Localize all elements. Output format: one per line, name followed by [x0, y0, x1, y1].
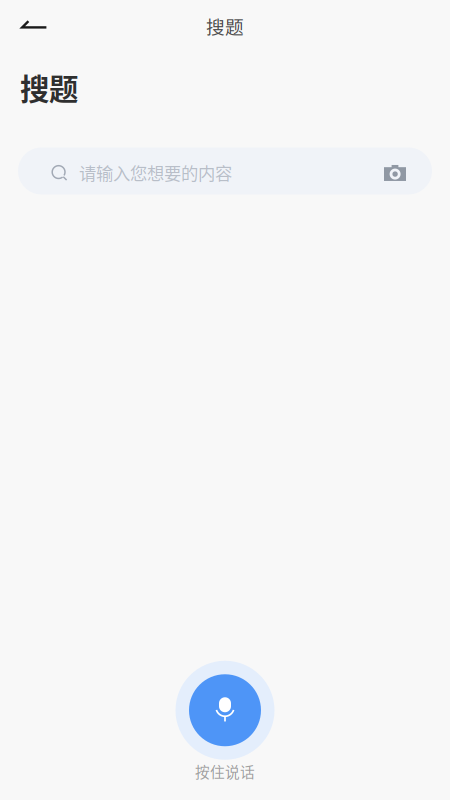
- staticText: 请输入您想要的内容: [79, 160, 232, 185]
- staticText: 搜题: [206, 12, 244, 39]
- staticText: 按住说话: [195, 761, 255, 782]
- staticText: 搜题: [20, 66, 78, 108]
- button[interactable]: Back: [0, 2, 57, 49]
- button[interactable]: 按住说话: [175, 661, 274, 782]
- button[interactable]: 请输入您想要的内容: [18, 147, 432, 194]
